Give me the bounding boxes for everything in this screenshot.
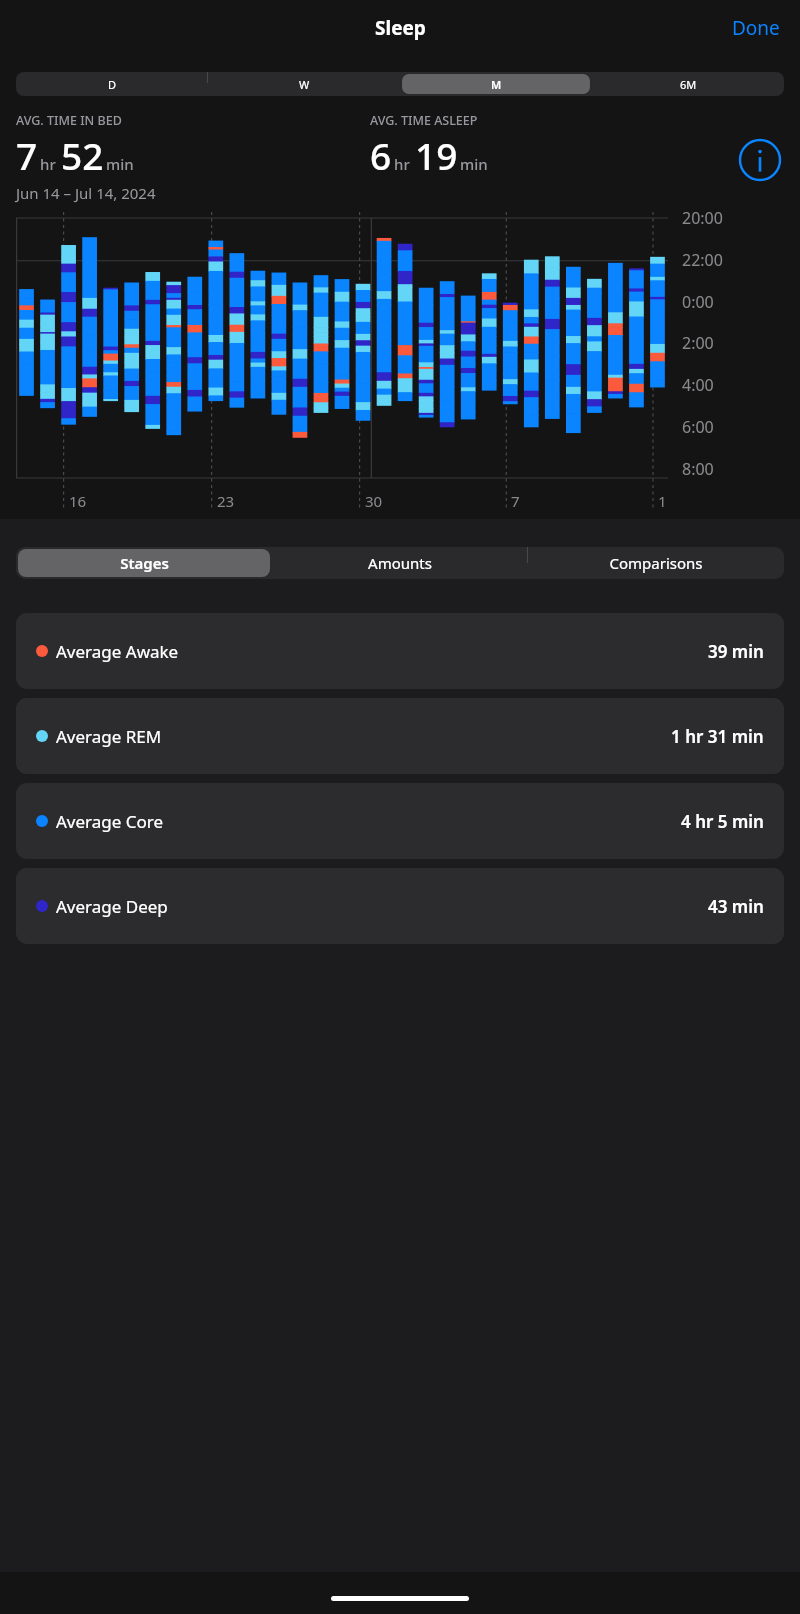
staticText: 8:00 — [682, 458, 714, 480]
staticText: D — [108, 77, 117, 92]
staticText: 19 — [415, 130, 458, 180]
staticText: AVG. TIME ASLEEP — [370, 112, 478, 129]
staticText: 39 min — [708, 640, 764, 663]
staticText: 2:00 — [682, 332, 714, 354]
staticText: 23 — [217, 491, 235, 511]
staticText: 4 hr 5 min — [681, 810, 764, 833]
button[interactable]: Average Awake — [16, 613, 784, 689]
staticText: 1 hr 31 min — [671, 725, 764, 748]
staticText: Jun 14 – Jul 14, 2024 — [16, 183, 156, 203]
button[interactable]: M — [402, 74, 590, 94]
button[interactable]: W — [210, 74, 398, 94]
staticText: M — [491, 77, 502, 92]
staticText: 1 — [658, 491, 667, 511]
staticText: 52 — [61, 130, 104, 180]
staticText: Average Deep — [56, 895, 168, 918]
button[interactable]: Stages — [18, 549, 270, 577]
staticText: Comparisons — [609, 553, 703, 573]
staticText: 30 — [365, 491, 383, 511]
staticText: 6M — [680, 77, 697, 92]
staticText: AVG. TIME IN BED — [16, 112, 122, 129]
staticText: 0:00 — [682, 291, 714, 313]
staticText: 20:00 — [682, 207, 723, 229]
staticText: 6 — [370, 130, 392, 180]
staticText: 4:00 — [682, 374, 714, 396]
button[interactable]: Amounts — [274, 549, 526, 577]
staticText: W — [299, 77, 310, 92]
button[interactable]: About sleep data — [736, 136, 784, 184]
staticText: 22:00 — [682, 249, 723, 271]
staticText: min — [106, 154, 134, 174]
staticText: 43 min — [708, 895, 764, 918]
staticText: Average Core — [56, 810, 164, 833]
staticText: Sleep — [375, 15, 426, 41]
staticText: hr — [394, 154, 410, 174]
staticText: Average Awake — [56, 640, 179, 663]
staticText: Amounts — [368, 553, 432, 573]
staticText: hr — [40, 154, 56, 174]
staticText: Done — [732, 15, 780, 41]
button[interactable]: Average REM — [16, 698, 784, 774]
button[interactable]: 6M — [594, 74, 782, 94]
button[interactable]: Average Deep — [16, 868, 784, 944]
staticText: min — [460, 154, 488, 174]
staticText: 16 — [69, 491, 87, 511]
staticText: Stages — [120, 553, 169, 573]
button[interactable]: Comparisons — [530, 549, 782, 577]
button[interactable]: Average Core — [16, 783, 784, 859]
button[interactable]: Done — [724, 9, 788, 47]
staticText: 7 — [511, 491, 520, 511]
staticText: Average REM — [56, 725, 162, 748]
staticText: 7 — [16, 130, 38, 180]
button[interactable]: D — [18, 74, 206, 94]
staticText: 6:00 — [682, 416, 714, 438]
